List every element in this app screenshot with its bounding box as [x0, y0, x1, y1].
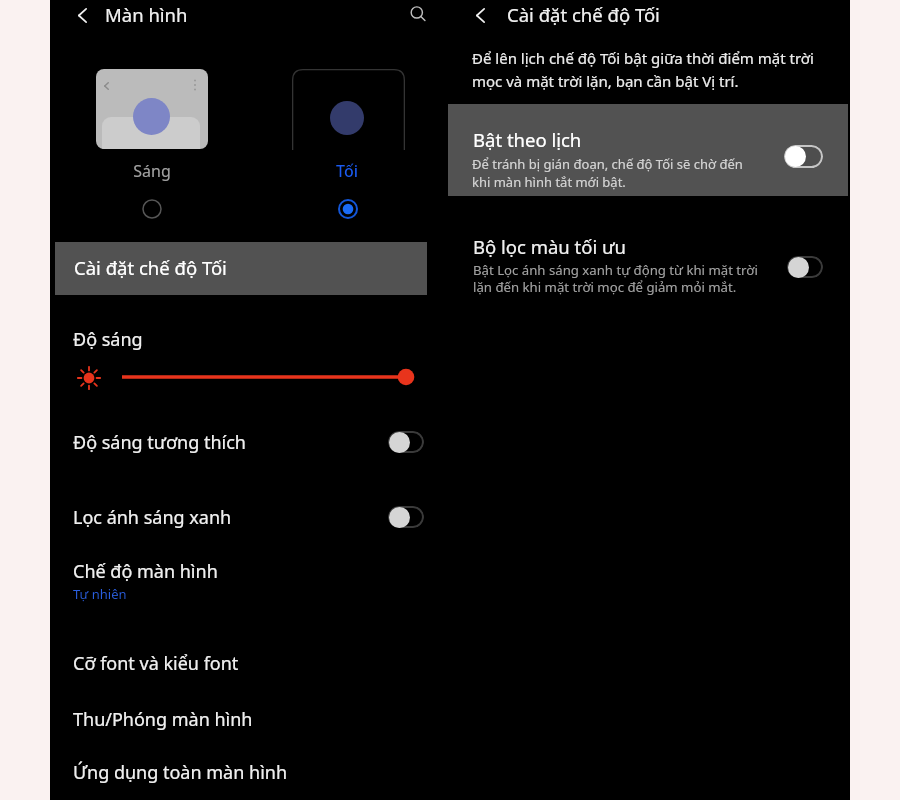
staticText: Bật theo lịch — [473, 127, 582, 152]
button[interactable]: Bộ lọc màu tối ưu — [450, 228, 850, 308]
staticText: Độ sáng — [73, 327, 143, 352]
button[interactable]: Brightness — [116, 365, 416, 389]
staticText: Để tránh bị gián đoạn, chế độ Tối sẽ chờ… — [472, 155, 755, 191]
button[interactable]: Back — [465, 0, 495, 30]
button[interactable]: Chế độ màn hình — [50, 559, 450, 611]
staticText: Sáng — [133, 160, 171, 182]
button[interactable]: Dark theme — [332, 193, 363, 224]
button[interactable]: Độ sáng tương thích — [50, 418, 450, 466]
button[interactable]: Tối — [297, 160, 397, 182]
staticText: Tự nhiên — [73, 585, 127, 603]
button[interactable]: Search — [403, 0, 433, 29]
button[interactable] — [292, 69, 405, 150]
staticText: Bật Lọc ánh sáng xanh tự động từ khi mặt… — [473, 261, 758, 296]
button[interactable]: Ứng dụng toàn màn hình — [50, 759, 450, 785]
button[interactable] — [96, 69, 208, 149]
staticText: Cỡ font và kiểu font — [73, 651, 239, 676]
staticText: Chế độ màn hình — [73, 559, 218, 584]
button[interactable]: Thu/Phóng màn hình — [50, 706, 450, 732]
button[interactable]: Cỡ font và kiểu font — [50, 650, 450, 676]
staticText: Ứng dụng toàn màn hình — [73, 760, 288, 785]
button[interactable]: Sáng — [102, 160, 202, 182]
staticText: Thu/Phóng màn hình — [73, 707, 253, 732]
button[interactable]: Bật theo lịch — [448, 104, 848, 196]
button[interactable]: Lọc ánh sáng xanh — [50, 493, 450, 541]
staticText: Bộ lọc màu tối ưu — [473, 234, 626, 259]
staticText: Cài đặt chế độ Tối — [507, 2, 660, 27]
staticText: Lọc ánh sáng xanh — [73, 505, 232, 530]
staticText: Tối — [336, 160, 358, 182]
staticText: Độ sáng tương thích — [73, 430, 246, 455]
staticText: Màn hình — [105, 2, 188, 27]
button[interactable]: Back — [67, 0, 97, 30]
button[interactable]: Cài đặt chế độ Tối — [55, 242, 427, 295]
staticText: Cài đặt chế độ Tối — [74, 255, 227, 280]
button[interactable]: Light theme — [136, 193, 167, 224]
staticText: Để lên lịch chế độ Tối bật giữa thời điể… — [472, 48, 832, 91]
